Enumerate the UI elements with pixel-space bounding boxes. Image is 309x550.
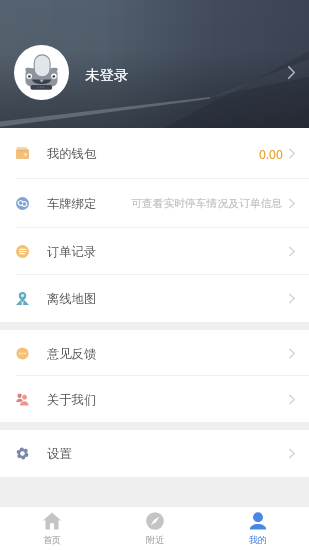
staticText: 附近	[146, 534, 164, 545]
staticText: 意见反馈	[47, 346, 97, 361]
staticText: 关于我们	[47, 392, 97, 407]
button[interactable]: 首页	[0, 507, 103, 550]
button[interactable]: 意见反馈	[0, 330, 309, 376]
button[interactable]: 附近	[103, 507, 206, 550]
staticText: 我的钱包	[47, 146, 97, 161]
button[interactable]: 离线地图	[0, 275, 309, 322]
staticText: 订单记录	[47, 244, 97, 259]
staticText: 首页	[43, 534, 61, 545]
staticText: 离线地图	[47, 291, 97, 306]
button[interactable]: 车牌绑定	[0, 179, 309, 228]
staticText: 设置	[47, 446, 72, 461]
staticText: 未登录	[85, 66, 129, 84]
button[interactable]: 我的钱包	[0, 128, 309, 179]
button[interactable]: 设置	[0, 430, 309, 477]
staticText: 车牌绑定	[47, 196, 97, 211]
button[interactable]: 关于我们	[0, 376, 309, 422]
button[interactable]: 订单记录	[0, 228, 309, 275]
staticText: 可查看实时停车情况及订单信息	[131, 197, 283, 211]
button[interactable]: 未登录	[0, 0, 309, 128]
staticText: 我的	[249, 534, 267, 545]
button[interactable]: 我的	[206, 507, 309, 550]
staticText: 0.00	[259, 146, 283, 162]
